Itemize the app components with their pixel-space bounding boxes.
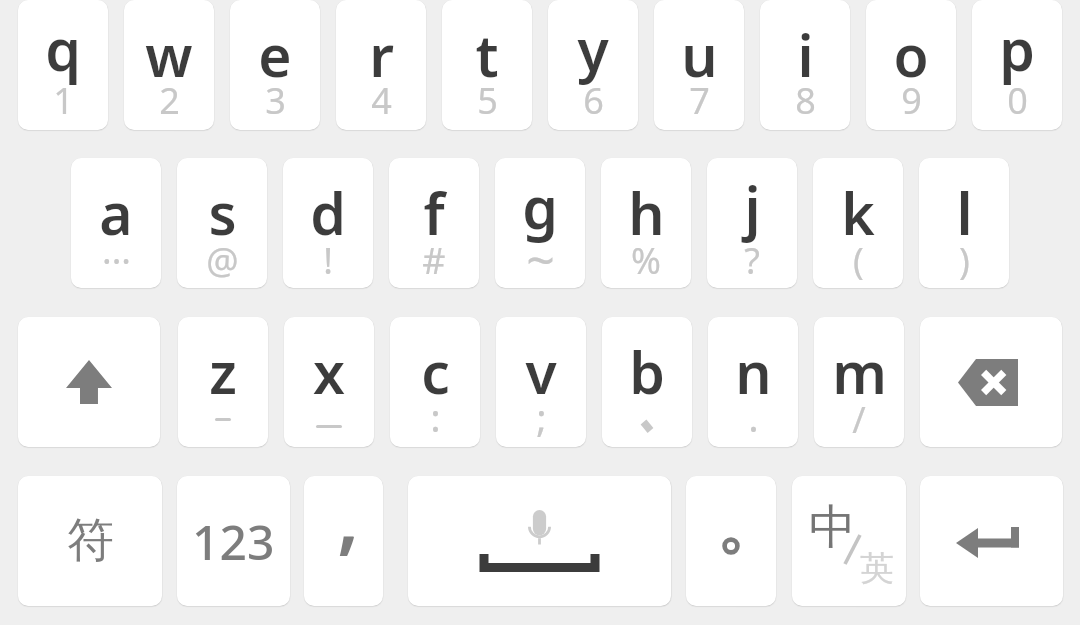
staticText: a [99,174,133,252]
staticText: : [430,390,441,443]
staticText: ! [323,236,333,285]
staticText: h [628,174,665,252]
staticText: j [744,168,761,246]
button[interactable]: j [707,158,797,288]
button[interactable]: Backspace [920,317,1062,447]
button[interactable]: Shift [18,317,160,447]
button[interactable]: h [601,158,691,288]
staticText: v [525,333,557,411]
button[interactable]: Symbols [18,476,162,606]
button[interactable]: n [708,317,798,447]
staticText: y [577,10,609,88]
staticText: 8 [795,76,816,125]
staticText: x [313,333,345,411]
button[interactable]: w [124,0,214,130]
button[interactable]: y [548,0,638,130]
staticText: ~ [526,225,555,288]
staticText: 123 [192,509,275,574]
button[interactable]: o [866,0,956,130]
button[interactable]: f [389,158,479,288]
button[interactable]: Comma [304,476,383,606]
staticText: 英 [860,547,894,590]
staticText: 1 [53,76,74,125]
staticText: 0 [1007,76,1028,125]
button[interactable]: Numbers [177,476,290,606]
button[interactable]: i [760,0,850,130]
button[interactable]: Space [408,476,671,606]
staticText: 中 [809,498,856,557]
button[interactable]: v [496,317,586,447]
button[interactable]: t [442,0,532,130]
staticText: d [310,174,346,252]
staticText: n [735,333,772,411]
staticText: 7 [689,76,710,125]
staticText: q [45,10,81,88]
button[interactable]: Period [686,476,776,606]
staticText: i [797,16,814,94]
staticText: c [421,333,450,411]
staticText: r [369,16,394,94]
button[interactable]: m [814,317,904,447]
staticText: 3 [265,76,286,125]
button[interactable]: e [230,0,320,130]
staticText: 符 [67,511,114,570]
button[interactable]: z [178,317,268,447]
button[interactable]: b [602,317,692,447]
staticText: k [841,174,875,252]
button[interactable]: u [654,0,744,130]
staticText: m [832,333,887,411]
button[interactable]: a [71,158,161,288]
staticText: w [145,16,193,94]
staticText: o [893,16,929,94]
button[interactable]: Switch language [792,476,906,606]
staticText: b [629,333,665,411]
staticText: 9 [901,76,922,125]
staticText: ( [853,236,864,285]
staticText: ; [536,390,547,443]
button[interactable]: p [972,0,1062,130]
staticText: 2 [159,76,180,125]
staticText: / [852,395,866,444]
button[interactable]: g [495,158,585,288]
staticText: ) [959,236,970,285]
button[interactable]: Enter [920,476,1063,606]
staticText: f [423,174,445,252]
staticText: , [337,476,360,569]
staticText: 6 [583,76,604,125]
button[interactable]: k [813,158,903,288]
staticText: s [208,174,237,252]
staticText: e [258,16,292,94]
staticText: 5 [477,76,498,125]
staticText: ... [102,226,131,275]
staticText: # [422,236,446,285]
staticText: z [209,333,237,411]
button[interactable]: q [18,0,108,130]
button[interactable]: r [336,0,426,130]
staticText: ? [744,236,760,285]
button[interactable]: x [284,317,374,447]
staticText: @ [206,236,239,285]
staticText: % [631,236,661,285]
staticText: p [999,10,1035,88]
staticText: u [681,16,718,94]
staticText: g [522,168,558,246]
staticText: t [475,16,499,94]
button[interactable]: d [283,158,373,288]
button[interactable]: c [390,317,480,447]
staticText: 4 [371,76,392,125]
button[interactable]: l [919,158,1009,288]
staticText: . [748,390,759,443]
staticText: l [956,174,973,252]
button[interactable]: s [177,158,267,288]
